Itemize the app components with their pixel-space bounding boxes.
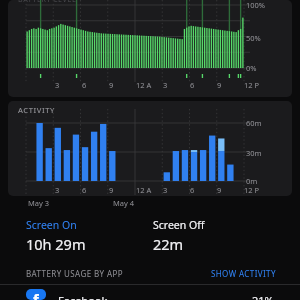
staticText: 10h 29m	[26, 234, 86, 254]
staticText: May 3	[28, 198, 50, 208]
staticText: Screen On	[26, 218, 77, 232]
staticText: 21%	[252, 293, 274, 300]
staticText: 3	[55, 185, 60, 195]
staticText: 30m	[246, 148, 262, 158]
staticText: 6	[82, 80, 87, 90]
staticText: 3	[55, 80, 60, 90]
staticText: 9	[217, 80, 222, 90]
staticText: 6	[190, 185, 195, 195]
staticText: 12 A	[136, 185, 152, 195]
staticText: ACTIVITY	[18, 105, 56, 115]
other: Facebook	[26, 289, 46, 300]
staticText: 60m	[246, 118, 262, 128]
staticText: Screen Off	[153, 218, 205, 232]
staticText: 9	[217, 185, 222, 195]
staticText: 3	[163, 80, 168, 90]
staticText: 22m	[153, 234, 184, 254]
staticText: May 4	[113, 198, 135, 208]
staticText: 9	[109, 80, 114, 90]
staticText: 0%	[246, 63, 257, 73]
staticText: Facebook	[58, 293, 108, 300]
staticText: BATTERY LEVEL	[18, 0, 77, 5]
button[interactable]: Screen Off	[153, 218, 280, 254]
staticText: f	[33, 289, 39, 300]
staticText: 12 P	[244, 80, 260, 90]
button[interactable]: SHOW ACTIVITY	[211, 268, 276, 279]
staticText: 12 P	[244, 185, 260, 195]
staticText: 6	[82, 185, 87, 195]
button[interactable]: Facebook	[26, 289, 274, 300]
staticText: 12 A	[136, 80, 152, 90]
staticText: 0m	[246, 176, 258, 186]
staticText: BATTERY USAGE BY APP	[26, 268, 123, 279]
staticText: 50%	[246, 33, 261, 43]
staticText: 9	[109, 185, 114, 195]
staticText: 100%	[246, 0, 266, 10]
staticText: 6	[190, 80, 195, 90]
button[interactable]: Screen On	[26, 218, 153, 254]
staticText: SHOW ACTIVITY	[211, 268, 276, 279]
staticText: 3	[163, 185, 168, 195]
